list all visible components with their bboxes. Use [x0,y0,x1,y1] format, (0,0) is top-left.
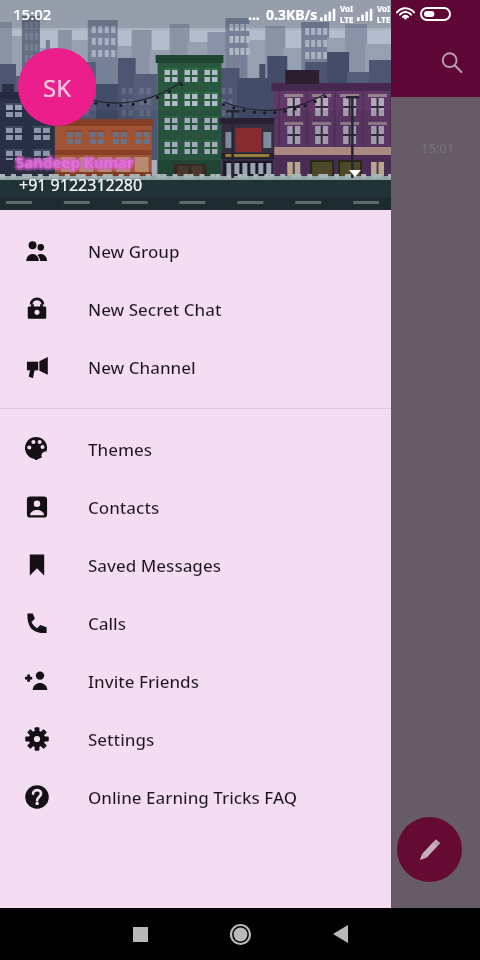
staticText: VoI [377,3,391,14]
staticText: Sandeep Kumar [15,153,133,173]
staticText: Sandeep Kumar [17,149,135,169]
staticText: Sandeep Kumar [16,154,134,174]
staticText: Sandeep Kumar [19,151,137,171]
staticText: Sandeep Kumar [14,151,132,171]
staticText: Saved Messages [88,554,221,577]
staticText: Contacts [88,496,160,519]
staticText: Sandeep Kumar [15,154,133,174]
staticText: Sandeep Kumar [18,151,136,171]
staticText: Sandeep Kumar [13,153,131,173]
staticText: 15:01 [421,139,455,157]
staticText: +91 9122312280 [19,174,143,196]
staticText: Sandeep Kumar [15,152,133,172]
button[interactable]: Back [323,917,357,951]
staticText: Sandeep Kumar [15,150,133,170]
staticText: Online Earning Tricks FAQ [88,786,298,809]
button[interactable]: New Channel [0,338,391,396]
button[interactable]: Home [222,916,258,952]
button[interactable]: Online Earning Tricks FAQ [0,768,391,826]
staticText: Sandeep Kumar [18,154,136,174]
staticText: New Channel [88,356,196,379]
staticText: ... [248,5,260,24]
staticText: Calls [88,612,126,635]
button[interactable]: Search [431,42,471,82]
staticText: Sandeep Kumar [17,151,135,171]
staticText: Sandeep Kumar [17,154,135,174]
staticText: Sandeep Kumar [15,155,133,175]
staticText: Sandeep Kumar [16,152,134,172]
button[interactable]: Contacts [0,478,391,536]
staticText: SK [43,71,72,104]
staticText: Sandeep Kumar [16,155,134,175]
staticText: New Secret Chat [88,298,222,321]
staticText: Sandeep Kumar [14,150,132,170]
staticText: 0.3KB/s [266,5,318,24]
button[interactable]: Invite Friends [0,652,391,710]
staticText: Sandeep Kumar [16,151,134,171]
button[interactable]: Recents [123,917,157,951]
staticText: VoI [340,3,354,14]
staticText: Sandeep Kumar [16,149,134,169]
button[interactable]: Themes [0,420,391,478]
staticText: LTE [340,14,354,25]
staticText: Themes [88,438,153,461]
staticText: Sandeep Kumar [18,153,136,173]
staticText: Sandeep Kumar [19,152,137,172]
staticText: Sandeep Kumar [17,155,135,175]
staticText: Sandeep Kumar [17,150,135,170]
staticText: Sandeep Kumar [14,154,132,174]
staticText: Invite Friends [88,670,199,693]
staticText: Sandeep Kumar [18,152,136,172]
button[interactable]: New Secret Chat [0,280,391,338]
staticText: Sandeep Kumar [15,151,133,171]
staticText: LTE [377,14,391,25]
staticText: Sandeep Kumar [14,153,132,173]
button[interactable]: SK [0,0,391,210]
button[interactable]: Settings [0,710,391,768]
button[interactable]: Calls [0,594,391,652]
staticText: Sandeep Kumar [18,150,136,170]
staticText: Sandeep Kumar [15,149,133,169]
staticText: Sandeep Kumar [19,153,137,173]
staticText: 15:02 [13,4,52,24]
button[interactable]: Saved Messages [0,536,391,594]
staticText: Sandeep Kumar [16,150,134,170]
staticText: Sandeep Kumar [13,151,131,171]
staticText: Sandeep Kumar [17,153,135,173]
button[interactable]: New Group [0,222,391,280]
staticText: Sandeep Kumar [13,152,131,172]
staticText: Sandeep Kumar [17,152,135,172]
staticText: Settings [88,728,155,751]
staticText: Sandeep Kumar [14,152,132,172]
staticText: New Group [88,240,180,263]
button[interactable]: New message [397,817,462,882]
staticText: Sandeep Kumar [16,153,134,173]
